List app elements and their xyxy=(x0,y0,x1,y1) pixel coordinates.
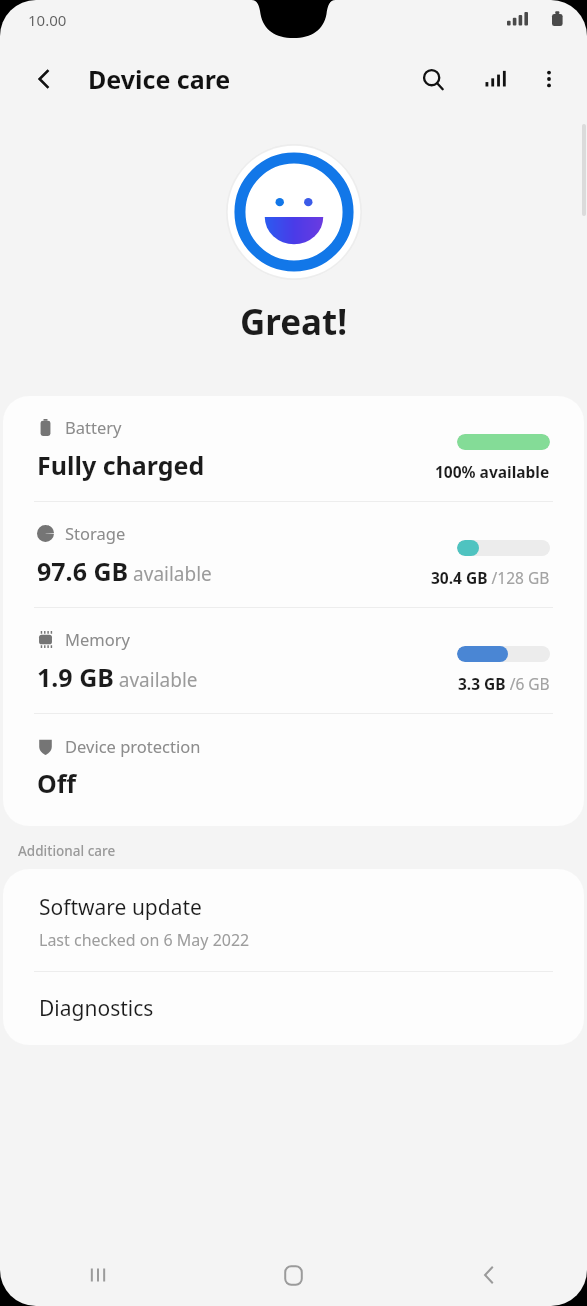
button[interactable]: Storage xyxy=(3,502,584,607)
staticText: Software update xyxy=(39,893,202,922)
staticText: 30.4 GB /128 GB xyxy=(431,567,550,588)
staticText: Last checked on 6 May 2022 xyxy=(39,929,250,951)
staticText: Memory xyxy=(65,628,130,650)
button[interactable]: Back xyxy=(24,59,64,99)
staticText: 10.00 xyxy=(28,10,67,30)
staticText: Off xyxy=(37,766,77,800)
staticText: 1.9 GB available xyxy=(37,660,198,694)
staticText: Battery xyxy=(65,416,122,438)
staticText: 3.3 GB /6 GB xyxy=(458,673,550,694)
staticText: Diagnostics xyxy=(39,994,154,1023)
staticText: Device care xyxy=(88,62,231,96)
button[interactable]: Home xyxy=(195,1244,391,1306)
button[interactable]: Memory xyxy=(3,608,584,713)
staticText: 97.6 GB available xyxy=(37,554,212,588)
button[interactable]: Usage statistics xyxy=(471,57,515,101)
button[interactable]: Back xyxy=(391,1244,587,1306)
staticText: 100% available xyxy=(435,461,550,482)
staticText: Great! xyxy=(0,298,587,346)
button[interactable]: Device protection xyxy=(3,714,584,826)
staticText: Device protection xyxy=(65,735,201,757)
staticText: Additional care xyxy=(18,842,116,860)
staticText: Storage xyxy=(65,522,126,544)
staticText: Fully charged xyxy=(37,448,205,482)
button[interactable]: More options xyxy=(527,57,571,101)
button[interactable]: Search xyxy=(411,57,455,101)
button[interactable]: Diagnostics xyxy=(3,972,584,1045)
button[interactable]: Battery xyxy=(3,396,584,501)
button[interactable]: Software update xyxy=(3,869,584,971)
button[interactable]: Recents xyxy=(0,1244,195,1306)
